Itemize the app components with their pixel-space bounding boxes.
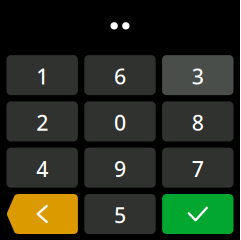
staticText: 9	[114, 154, 126, 183]
staticText: 8	[192, 108, 204, 136]
staticText: 2	[36, 108, 48, 136]
button[interactable]: 2	[6, 101, 78, 141]
button[interactable]: Confirm	[162, 194, 233, 234]
staticText: 3	[192, 62, 204, 90]
staticText: 5	[114, 201, 126, 229]
staticText: 1	[36, 62, 48, 90]
button[interactable]: Delete	[6, 194, 78, 234]
button[interactable]: 1	[6, 55, 78, 95]
button[interactable]: 4	[6, 148, 78, 188]
staticText: 7	[192, 154, 204, 183]
staticText: 0	[114, 108, 126, 136]
button[interactable]: 5	[84, 194, 156, 234]
staticText: 6	[114, 62, 126, 90]
button[interactable]: 6	[84, 55, 156, 95]
button[interactable]: 7	[162, 148, 233, 188]
button[interactable]: 9	[84, 148, 156, 188]
button[interactable]: 0	[84, 101, 156, 141]
button[interactable]: 3	[162, 55, 233, 95]
button[interactable]: 8	[162, 101, 233, 141]
staticText: 4	[36, 154, 48, 183]
